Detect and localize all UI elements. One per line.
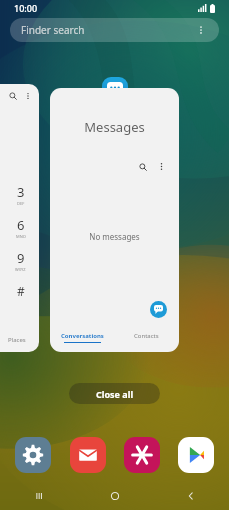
staticText: MNO — [16, 234, 26, 239]
button[interactable]: Close all — [69, 383, 160, 404]
staticText: # — [17, 283, 25, 299]
button[interactable]: Home — [77, 482, 153, 510]
staticText: Places — [8, 336, 26, 344]
button[interactable]: 3 — [0, 84, 39, 352]
button[interactable]: Galaxy Store — [124, 437, 160, 473]
staticText: 3 — [17, 183, 25, 201]
staticText: 6 — [17, 216, 25, 234]
button[interactable]: Messages — [50, 88, 179, 352]
button[interactable]: Settings — [15, 437, 51, 473]
button[interactable]: New conversation — [150, 301, 167, 318]
button[interactable]: Messages — [102, 77, 128, 103]
button[interactable]: Contacts — [114, 332, 179, 352]
staticText: Messages — [50, 118, 179, 136]
staticText: Conversations — [61, 332, 104, 340]
staticText: Contacts — [134, 332, 159, 340]
staticText: Finder search — [21, 23, 85, 37]
button[interactable]: Search — [137, 161, 148, 172]
staticText: DEF — [17, 201, 25, 206]
button[interactable]: Conversations — [50, 332, 114, 352]
button[interactable]: More options — [156, 161, 167, 172]
button[interactable]: Finder search — [10, 18, 219, 42]
staticText: 9 — [17, 249, 25, 267]
button[interactable]: Back — [153, 482, 229, 510]
button[interactable]: More options — [194, 23, 208, 37]
button[interactable]: Recents — [0, 482, 77, 510]
staticText: Close all — [96, 388, 134, 400]
button[interactable]: Email — [70, 437, 106, 473]
button[interactable]: Play Store — [178, 437, 214, 473]
staticText: WXYZ — [15, 267, 26, 272]
staticText: 10:00 — [14, 2, 38, 14]
staticText: No messages — [50, 231, 179, 242]
